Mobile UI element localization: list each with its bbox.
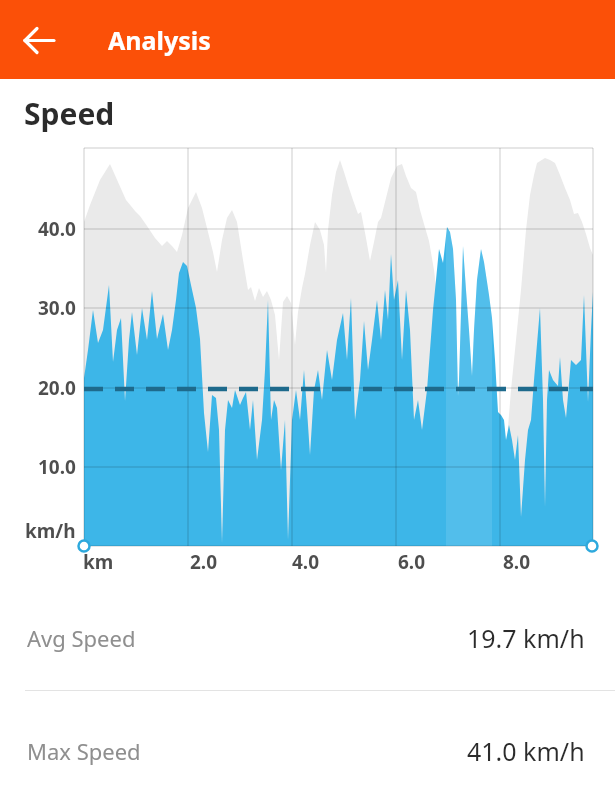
- staticText: 8.0: [503, 549, 531, 575]
- staticText: Avg Speed: [27, 623, 136, 653]
- button[interactable]: [14, 14, 66, 66]
- staticText: 41.0 km/h: [467, 734, 585, 768]
- staticText: Analysis: [108, 23, 211, 57]
- staticText: Speed: [24, 93, 115, 134]
- staticText: 6.0: [398, 549, 426, 575]
- button[interactable]: Max Speed: [0, 713, 615, 788]
- staticText: 20.0: [38, 375, 76, 401]
- staticText: 10.0: [38, 454, 76, 480]
- staticText: 19.7 km/h: [467, 621, 585, 655]
- button[interactable]: Avg Speed: [0, 600, 615, 675]
- staticText: 30.0: [38, 295, 76, 321]
- staticText: 2.0: [190, 549, 218, 575]
- staticText: 4.0: [292, 549, 320, 575]
- staticText: km: [83, 549, 114, 575]
- staticText: 40.0: [38, 216, 76, 242]
- staticText: km/h: [25, 518, 76, 544]
- staticText: Max Speed: [27, 736, 141, 766]
